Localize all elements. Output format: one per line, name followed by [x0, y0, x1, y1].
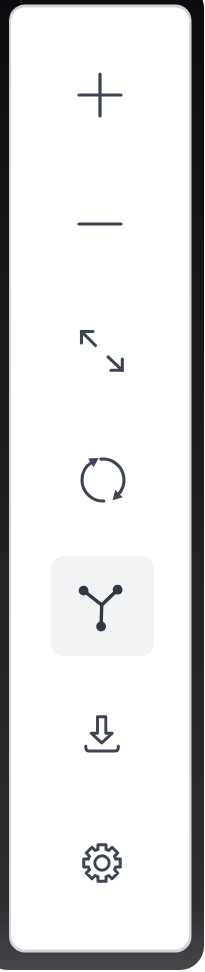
- button[interactable]: [74, 835, 130, 891]
- button[interactable]: [72, 67, 128, 123]
- button[interactable]: [74, 323, 130, 379]
- button[interactable]: [51, 556, 154, 656]
- button[interactable]: [72, 196, 128, 252]
- button[interactable]: [74, 706, 130, 762]
- button[interactable]: [75, 452, 131, 508]
